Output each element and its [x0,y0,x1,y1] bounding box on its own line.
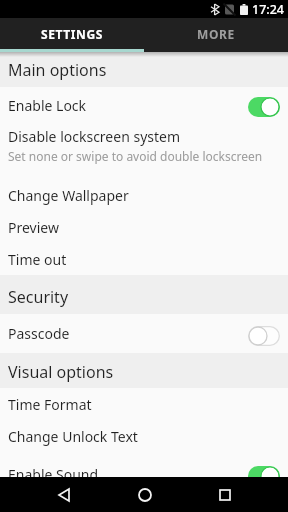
button[interactable]: Enable Lock [0,87,288,123]
staticText: Enable Lock [8,96,87,115]
button[interactable]: SETTINGS [0,18,144,49]
button[interactable]: Time out [0,243,288,275]
button[interactable]: Passcode [0,314,288,353]
button[interactable]: Enable Sound [0,452,288,477]
button[interactable]: Time Format [0,388,288,420]
staticText: 17:24 [252,1,285,18]
staticText: Set none or swipe to avoid double locksc… [8,148,263,164]
button[interactable]: Preview [0,211,288,243]
staticText: Disable lockscreen system [8,127,181,146]
staticText: Main options [8,59,107,81]
button[interactable] [127,477,162,512]
button[interactable] [46,477,81,512]
staticText: SETTINGS [41,26,103,42]
button[interactable]: MORE [144,18,288,49]
staticText: Change Wallpaper [8,186,129,205]
staticText: Passcode [8,324,70,343]
staticText: Preview [8,218,59,237]
staticText: Change Unlock Text [8,427,138,446]
button[interactable] [207,477,242,512]
button[interactable]: Change Wallpaper [0,179,288,211]
staticText: Enable Sound [8,465,99,477]
staticText: MORE [197,26,235,42]
staticText: Visual options [8,361,114,383]
staticText: Time out [8,250,67,269]
staticText: Security [8,286,69,308]
button[interactable]: Disable lockscreen system [0,123,288,179]
staticText: Time Format [8,395,92,414]
button[interactable]: Change Unlock Text [0,420,288,452]
